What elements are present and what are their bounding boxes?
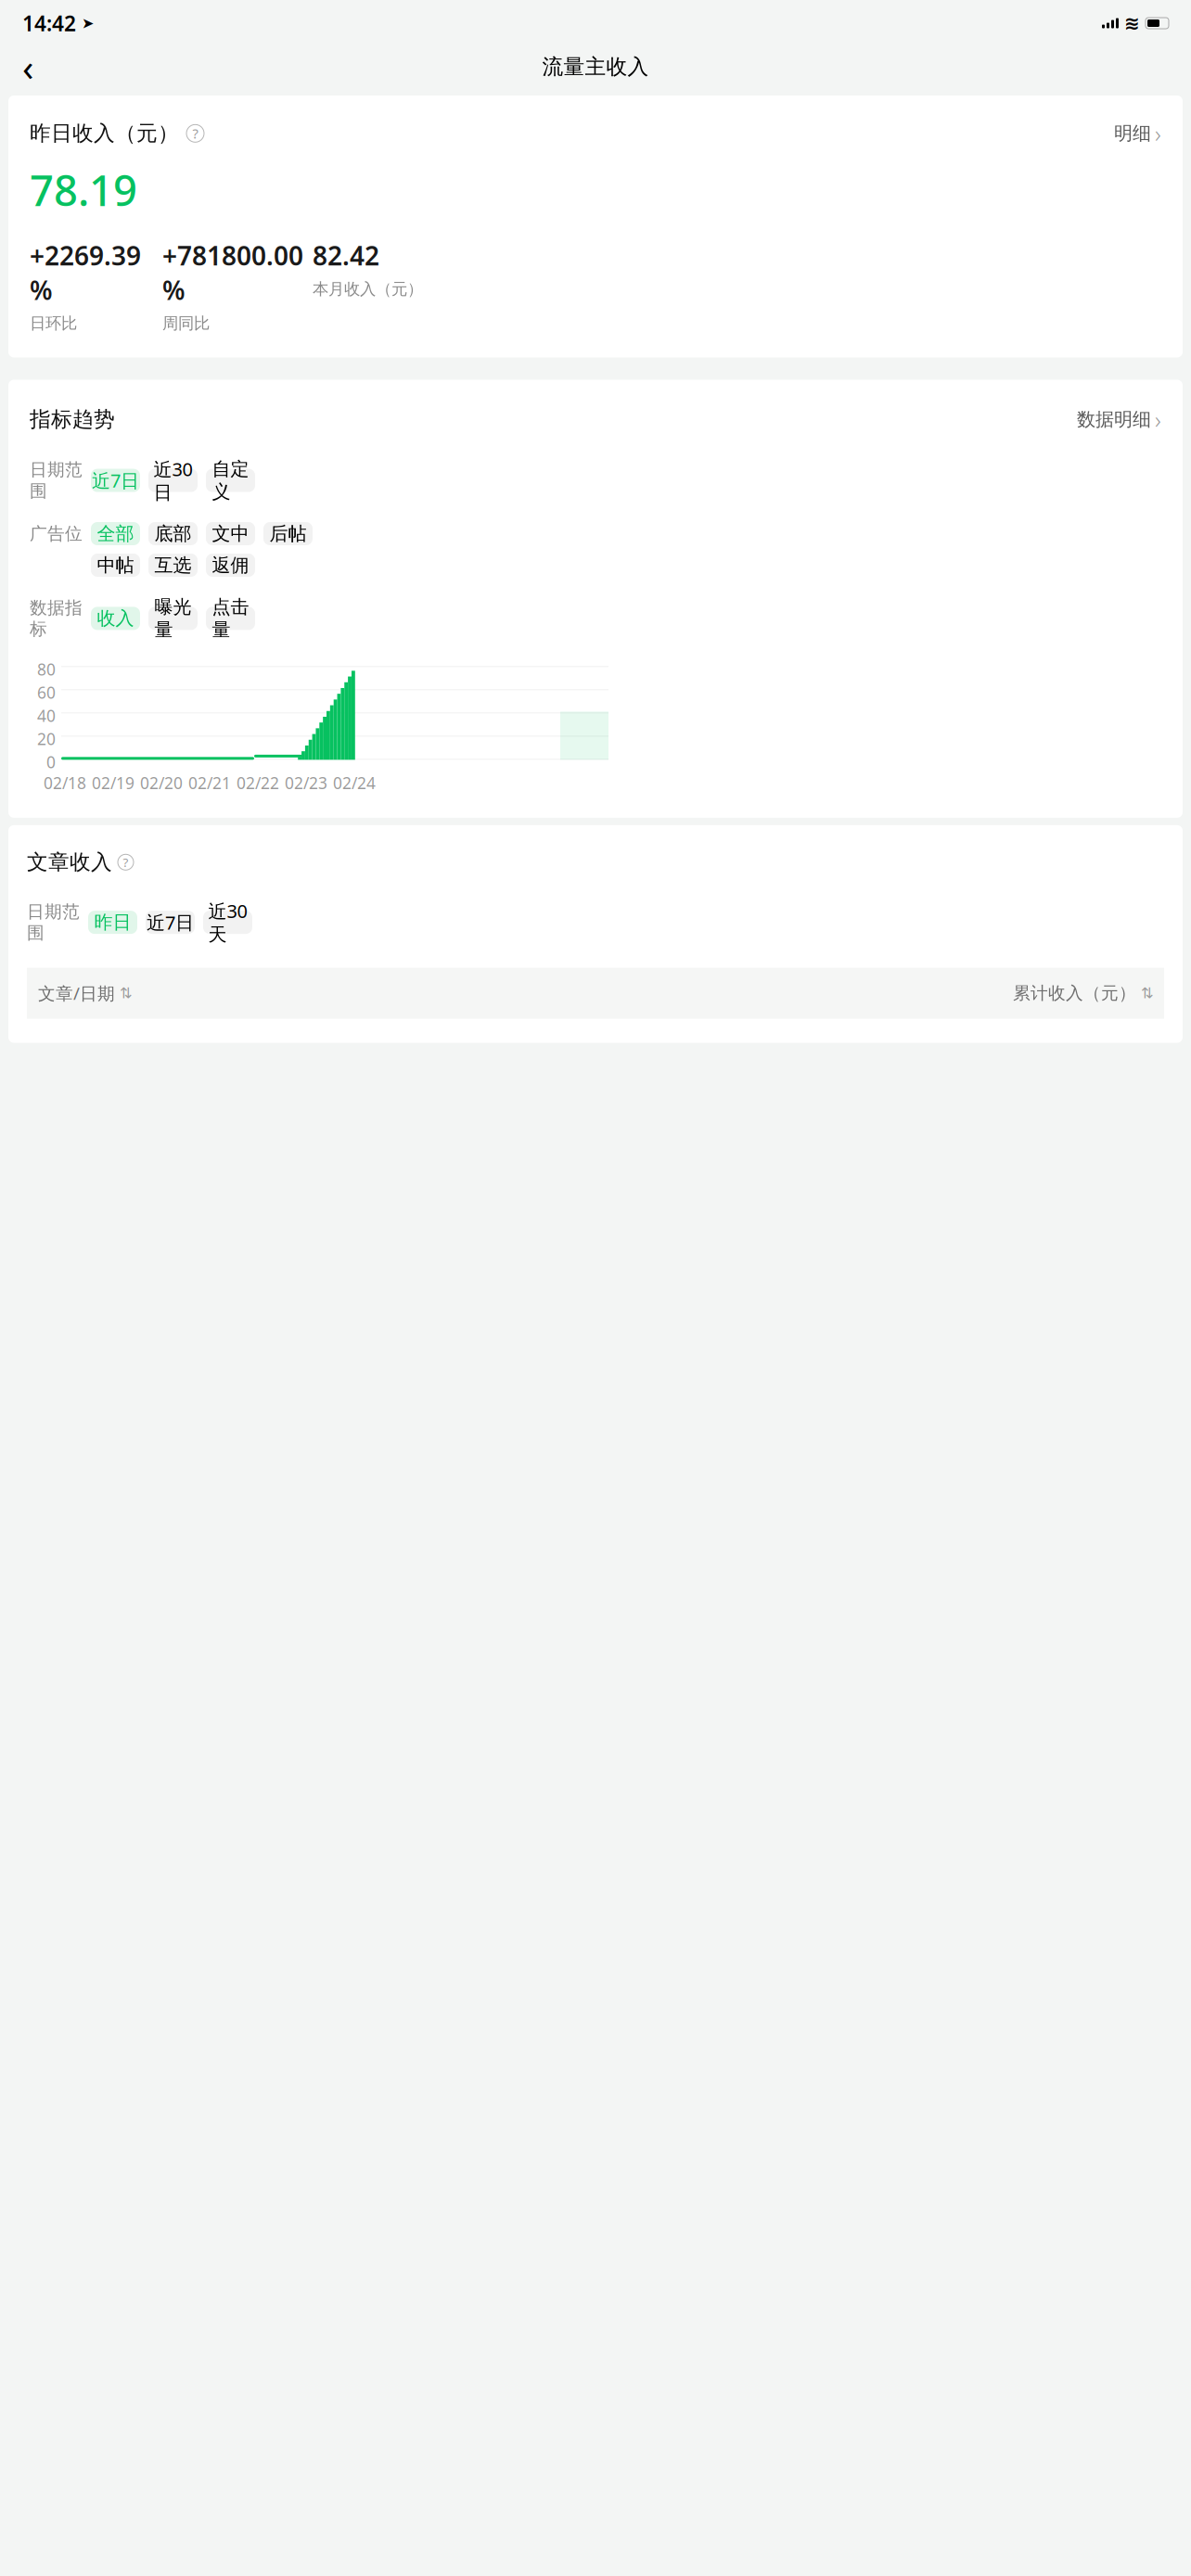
staticText: 底部 xyxy=(154,522,192,545)
staticText: 指标趋势 xyxy=(30,407,115,432)
button[interactable]: 文中 xyxy=(206,522,255,545)
staticText: 日期范围 xyxy=(27,901,80,944)
staticText: ? xyxy=(123,854,128,870)
staticText: 日期范围 xyxy=(30,459,83,502)
staticText: 中帖 xyxy=(97,554,134,577)
staticText: 02/22 xyxy=(237,772,279,794)
staticText: 02/21 xyxy=(188,772,231,794)
staticText: 互选 xyxy=(154,554,192,577)
staticText: 数据指标 xyxy=(30,597,83,640)
staticText: 自定义 xyxy=(212,458,249,503)
button[interactable]: 说明 xyxy=(118,854,134,870)
button[interactable]: 全部 xyxy=(91,522,140,545)
staticText: 02/20 xyxy=(140,772,183,794)
staticText: 60 xyxy=(37,682,56,703)
staticText: 点击量 xyxy=(212,596,249,641)
staticText: 20 xyxy=(37,728,56,750)
staticText: 曝光量 xyxy=(154,596,192,641)
staticText: 40 xyxy=(37,705,56,726)
staticText: 返佣 xyxy=(212,554,249,577)
button[interactable]: 近7日 xyxy=(146,911,195,934)
button[interactable]: 后帖 xyxy=(263,522,313,545)
button[interactable]: 昨日 xyxy=(88,911,137,934)
staticText: 昨日收入（元） xyxy=(30,120,179,146)
button[interactable]: 底部 xyxy=(148,522,198,545)
staticText: +2269.39% xyxy=(30,238,141,307)
staticText: 14:42 xyxy=(22,9,76,37)
staticText: 文中 xyxy=(212,522,249,545)
button[interactable]: 返佣 xyxy=(206,554,255,577)
staticText: ‹ xyxy=(22,42,33,91)
staticText: ⇅ xyxy=(1141,985,1153,1002)
staticText: 02/24 xyxy=(333,772,376,794)
button[interactable]: 点击量 xyxy=(206,607,255,630)
staticText: 文章收入 xyxy=(27,849,112,875)
staticText: 02/19 xyxy=(92,772,134,794)
staticText: › xyxy=(1155,118,1161,149)
button[interactable]: 明细 xyxy=(1114,118,1161,149)
staticText: 周同比 xyxy=(162,314,210,333)
staticText: ? xyxy=(192,124,198,142)
button[interactable]: 互选 xyxy=(148,554,198,577)
button[interactable]: 说明 xyxy=(186,125,204,142)
staticText: 近7日 xyxy=(147,910,194,935)
staticText: 明细 xyxy=(1114,122,1151,145)
staticText: 数据明细 xyxy=(1077,408,1151,431)
button[interactable]: 曝光量 xyxy=(148,607,198,630)
staticText: ≋ xyxy=(1124,13,1140,34)
staticText: 日环比 xyxy=(30,314,77,333)
button[interactable]: 收入 xyxy=(91,607,140,630)
staticText: 02/23 xyxy=(285,772,327,794)
staticText: 80 xyxy=(37,659,56,680)
button[interactable]: 自定义 xyxy=(206,469,255,492)
staticText: 近30天 xyxy=(208,899,247,946)
staticText: 全部 xyxy=(97,522,134,545)
staticText: 累计收入（元） xyxy=(1013,983,1136,1004)
staticText: +781800.00% xyxy=(162,238,303,307)
button[interactable]: 近7日 xyxy=(91,469,140,492)
staticText: 近30日 xyxy=(154,457,192,504)
staticText: 本月收入（元） xyxy=(313,279,423,299)
staticText: 流量主收入 xyxy=(542,54,649,80)
staticText: 收入 xyxy=(97,607,134,630)
staticText: 近7日 xyxy=(92,468,139,493)
button[interactable]: 中帖 xyxy=(91,554,140,577)
button[interactable]: 数据明细 xyxy=(1077,404,1161,435)
staticText: 78.19 xyxy=(30,162,137,218)
staticText: › xyxy=(1155,404,1161,435)
staticText: 文章/日期 xyxy=(38,982,115,1005)
staticText: ➤ xyxy=(82,15,94,32)
staticText: 82.42 xyxy=(313,238,379,273)
staticText: 0 xyxy=(46,751,56,773)
button[interactable]: 近30日 xyxy=(148,469,198,492)
staticText: ⇅ xyxy=(120,985,132,1002)
staticText: 后帖 xyxy=(269,522,307,545)
staticText: 昨日 xyxy=(94,911,131,934)
staticText: 广告位 xyxy=(30,523,83,544)
button[interactable]: 近30天 xyxy=(203,911,252,934)
button[interactable]: Back xyxy=(7,46,48,87)
staticText: 02/18 xyxy=(44,772,86,794)
